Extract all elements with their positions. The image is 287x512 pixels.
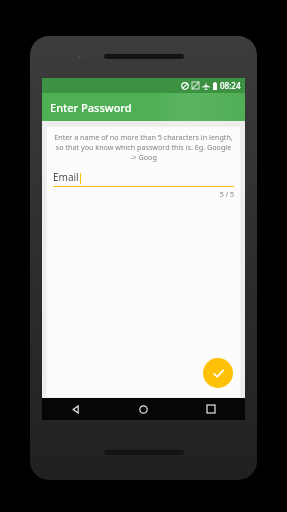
button[interactable]: Back	[42, 398, 109, 420]
staticText: Enter a name of no more than 5 character…	[53, 132, 234, 162]
button[interactable]: Enter a name of no more than 5 character…	[46, 126, 241, 398]
button[interactable]: Recent apps	[177, 398, 245, 420]
button[interactable]: Save password	[203, 358, 233, 388]
staticText: Enter Password	[50, 100, 132, 115]
button[interactable]: Home	[109, 398, 177, 420]
staticText: 5 / 5	[53, 190, 234, 200]
staticText: Email	[53, 170, 79, 184]
staticText: 08:24	[220, 80, 241, 91]
